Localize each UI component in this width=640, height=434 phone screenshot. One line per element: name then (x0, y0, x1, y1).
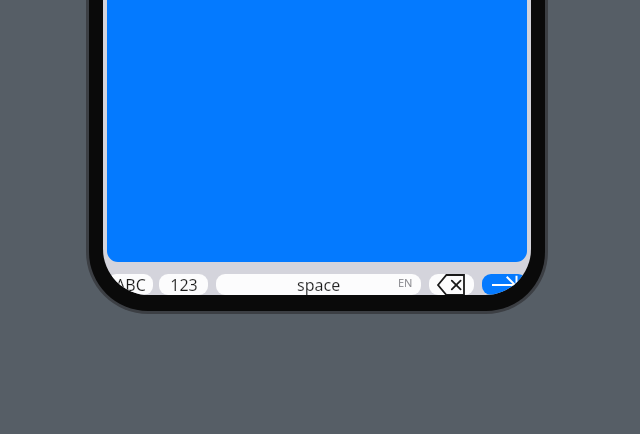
button[interactable]: Backspace (429, 274, 474, 295)
button[interactable]: space (216, 274, 421, 295)
staticText: EN (398, 275, 413, 290)
button[interactable]: 123 (159, 274, 208, 295)
staticText: ABC (115, 274, 146, 295)
button[interactable]: Next (482, 274, 527, 295)
staticText: space (297, 274, 341, 295)
button[interactable]: ABC (107, 274, 153, 295)
staticText: 123 (170, 274, 198, 295)
